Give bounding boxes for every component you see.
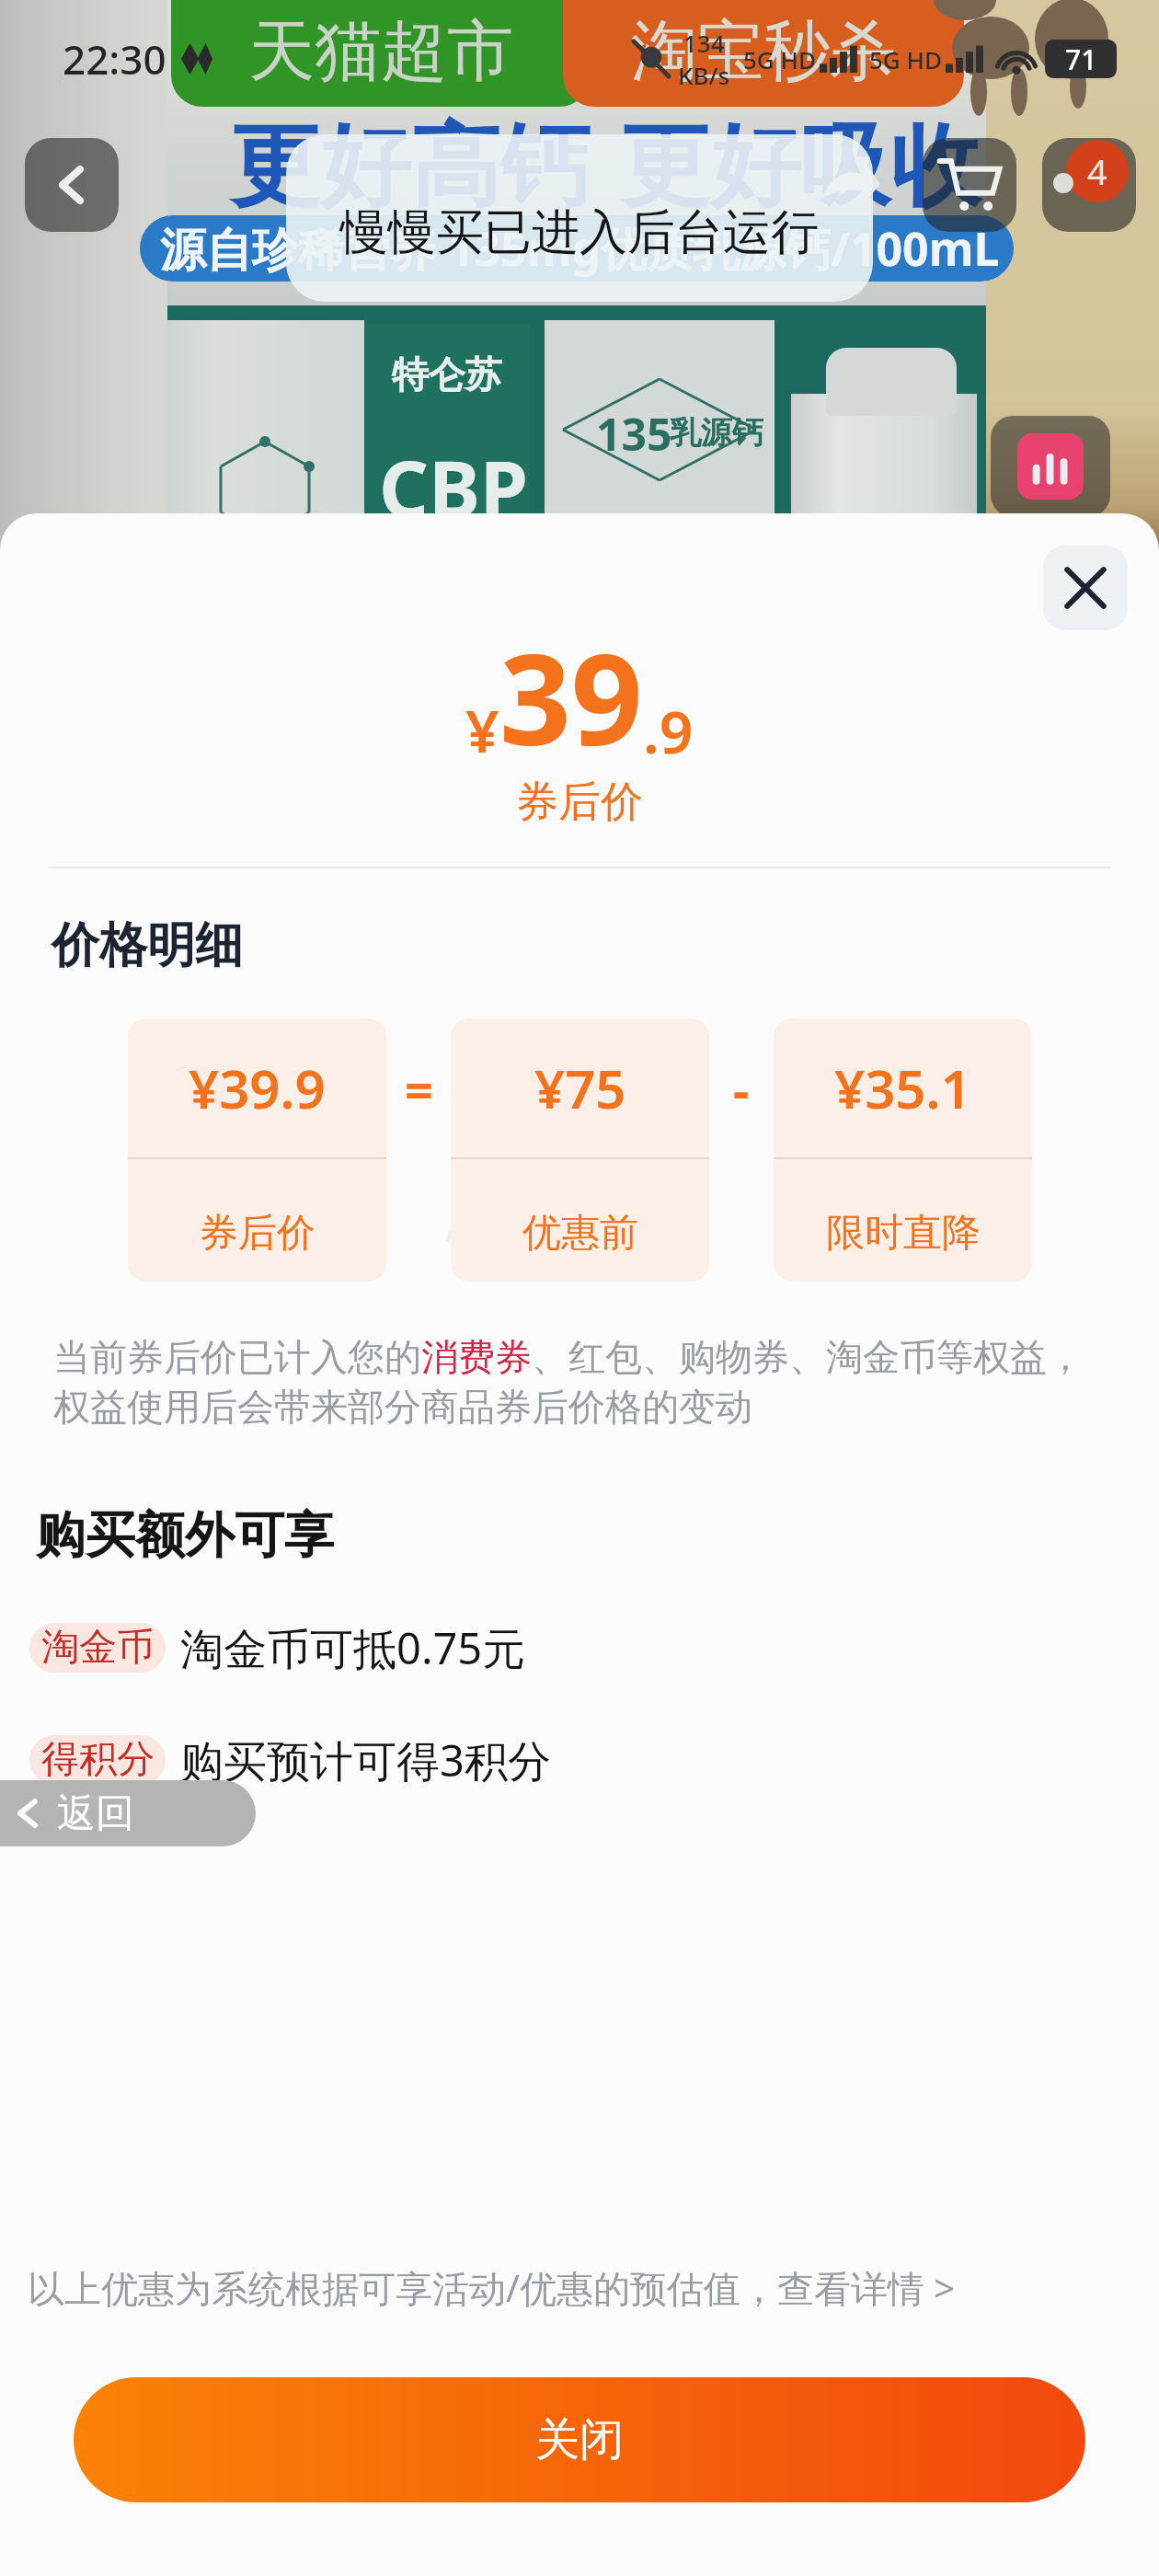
button[interactable]: Cart	[923, 138, 1016, 232]
staticText: 39	[499, 612, 643, 782]
button[interactable]: Close	[1043, 546, 1128, 630]
staticText: 4	[1087, 147, 1107, 195]
staticText: 更好吸收	[620, 110, 981, 224]
staticText: 5G HD	[869, 43, 942, 75]
staticText: ¥	[465, 690, 499, 770]
staticText: 慢星人类君	[447, 1211, 705, 1276]
staticText: 当前券后价已计入您的消费券、红包、购物券、淘金币等权益，	[53, 1334, 1084, 1380]
staticText: 乳源钙	[670, 413, 763, 453]
staticText: 淘宝秒杀	[631, 10, 896, 94]
staticText: 得积分	[41, 1736, 155, 1784]
staticText: -	[733, 1055, 750, 1123]
staticText: 购买额外可享	[36, 1504, 334, 1567]
button[interactable]: Back	[25, 138, 119, 232]
staticText: 返回	[57, 1789, 134, 1838]
staticText: 淘金币可抵0.75元	[180, 1618, 526, 1677]
button[interactable]: Price history	[991, 416, 1110, 517]
staticText: 权益使用后会带来部分商品券后价格的变动	[53, 1384, 752, 1430]
staticText: 更好高钙	[230, 110, 591, 224]
button[interactable]: 淘金币	[29, 1618, 1159, 1677]
button[interactable]: 返回	[0, 1780, 256, 1846]
staticText: 134	[683, 27, 725, 59]
button[interactable]: 得积分	[29, 1731, 1159, 1789]
staticText: 特仑苏	[392, 351, 502, 397]
staticText: ¥75	[534, 1052, 626, 1124]
staticText: 优惠前	[522, 1209, 638, 1258]
button[interactable]: 关闭	[74, 2377, 1085, 2502]
button[interactable]: More	[1042, 138, 1136, 232]
staticText: 慢慢买已进入后台运行	[340, 202, 819, 263]
staticText: 券后价	[516, 776, 643, 829]
staticText: 价格明细	[52, 915, 243, 976]
staticText: 源自珍稀营养 135mg优质乳源钙/100mL	[160, 217, 1000, 280]
staticText: 71	[1065, 40, 1097, 78]
staticText: ¥35.1	[834, 1052, 971, 1124]
staticText: 天猫超市	[248, 10, 513, 94]
staticText: 限时直降	[826, 1209, 981, 1258]
staticText: 券后价	[200, 1209, 316, 1258]
button[interactable]: Share	[803, 138, 897, 232]
staticText: 购买预计可得3积分	[180, 1731, 551, 1789]
staticText: ¥39.9	[189, 1052, 326, 1124]
staticText: .9	[643, 691, 694, 771]
button[interactable]: 以上优惠为系统根据可享活动/优惠的预估值，查看详情 >	[28, 2262, 956, 2313]
staticText: 22:30	[63, 31, 166, 86]
staticText: 关闭	[535, 2412, 624, 2467]
staticText: =	[405, 1055, 433, 1123]
staticText: CBP	[379, 434, 528, 539]
staticText: 5G HD	[743, 43, 816, 75]
staticText: KB/s	[678, 59, 730, 91]
staticText: 135	[596, 404, 672, 464]
staticText: 淘金币	[41, 1624, 155, 1672]
